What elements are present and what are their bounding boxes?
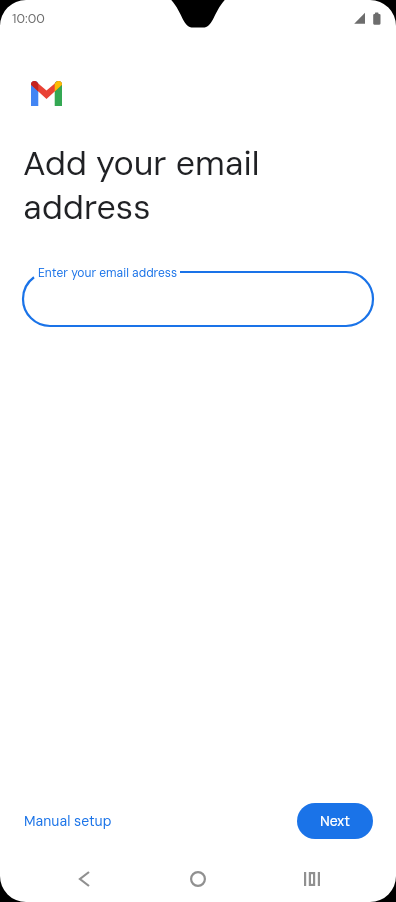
button[interactable]: Next: [297, 803, 373, 839]
staticText: 10:00: [12, 10, 45, 27]
button[interactable]: Manual setup: [24, 804, 112, 838]
staticText: Enter your email address: [38, 265, 178, 281]
staticText: Add your email address: [23, 141, 260, 229]
button[interactable]: Home: [178, 859, 218, 899]
staticText: Next: [320, 812, 350, 830]
button[interactable]: Back: [64, 859, 104, 899]
staticText: Manual setup: [24, 812, 112, 830]
button[interactable]: Recent apps: [292, 859, 332, 899]
